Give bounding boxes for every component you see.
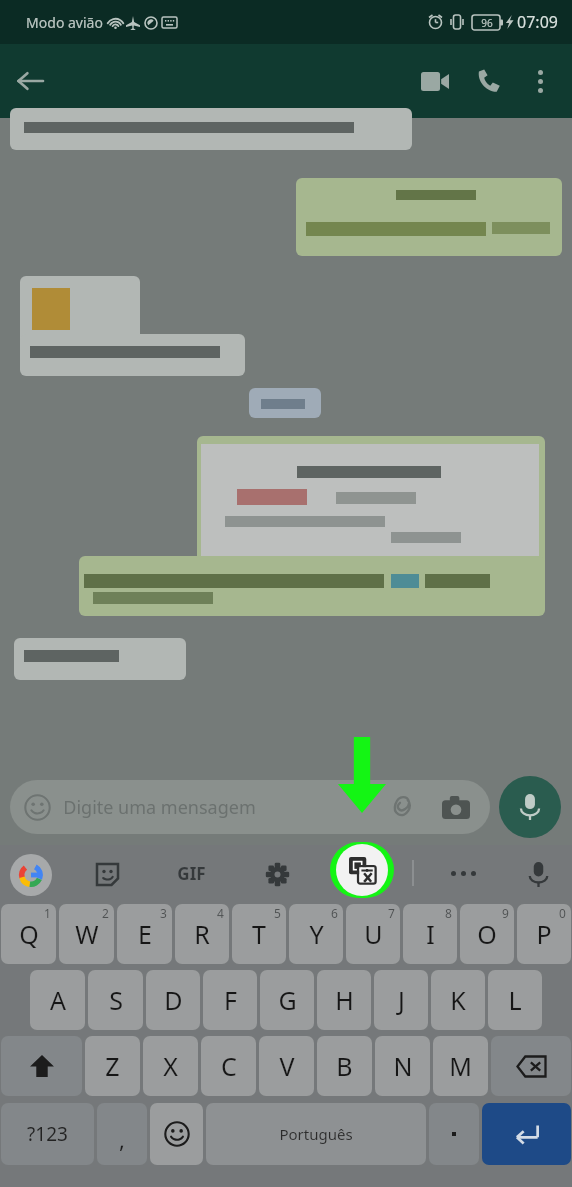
staticText: 4 <box>217 905 224 921</box>
staticText: J <box>398 983 405 1017</box>
button[interactable]: W <box>59 904 114 964</box>
staticText: W <box>75 917 99 951</box>
button[interactable]: C <box>201 1036 256 1096</box>
staticText: G <box>278 983 297 1017</box>
button[interactable]: ?123 <box>1 1103 94 1165</box>
staticText: A <box>50 983 66 1017</box>
button[interactable]: Q <box>1 904 56 964</box>
staticText: O <box>477 917 497 951</box>
button[interactable]: G <box>260 970 314 1030</box>
staticText: Z <box>105 1049 120 1083</box>
button[interactable]: D <box>146 970 200 1030</box>
staticText: M <box>449 1049 472 1083</box>
button[interactable]: L <box>488 970 542 1030</box>
staticText: Modo avião <box>26 13 103 32</box>
button[interactable]: Digite uma mensagem <box>10 780 490 834</box>
button[interactable]: A <box>30 970 85 1030</box>
staticText: 7 <box>388 905 395 921</box>
button[interactable]: U <box>346 904 400 964</box>
button[interactable]: N <box>375 1036 430 1096</box>
button[interactable]: More <box>440 859 486 887</box>
button[interactable]: P <box>517 904 571 964</box>
staticText: I <box>426 917 435 951</box>
staticText: 96 <box>481 16 493 30</box>
staticText: R <box>194 917 210 951</box>
staticText: ?123 <box>27 1121 68 1147</box>
staticText: S <box>109 983 123 1017</box>
button[interactable]: Settings <box>260 857 294 891</box>
button[interactable]: Emoji <box>150 1103 203 1165</box>
button[interactable]: , <box>97 1103 147 1165</box>
staticText: 1 <box>44 905 51 921</box>
button[interactable]: K <box>431 970 485 1030</box>
button[interactable]: Z <box>85 1036 140 1096</box>
staticText: U <box>364 917 383 951</box>
staticText: V <box>279 1049 295 1083</box>
button[interactable]: Stickers <box>90 857 124 891</box>
staticText: B <box>336 1049 353 1083</box>
staticText: Q <box>19 917 39 951</box>
staticText: P <box>536 917 552 951</box>
staticText: E <box>138 917 152 951</box>
staticText: X <box>163 1049 178 1083</box>
staticText: Digite uma mensagem <box>63 795 256 820</box>
staticText: , <box>119 1124 125 1154</box>
button[interactable]: B <box>317 1036 372 1096</box>
button[interactable]: X <box>143 1036 198 1096</box>
staticText: D <box>164 983 183 1017</box>
staticText: 6 <box>331 905 338 921</box>
staticText: K <box>450 983 466 1017</box>
staticText: H <box>335 983 354 1017</box>
button[interactable]: GIF <box>168 859 214 887</box>
staticText: 2 <box>102 905 109 921</box>
button[interactable]: Português <box>206 1103 426 1165</box>
staticText: T <box>252 917 266 951</box>
button[interactable]: Enter <box>482 1103 571 1165</box>
staticText: 3 <box>160 905 167 921</box>
button[interactable]: Back <box>6 57 54 105</box>
button[interactable]: Shift <box>1 1036 82 1096</box>
button[interactable]: E <box>117 904 172 964</box>
staticText: F <box>224 983 237 1017</box>
button[interactable]: F <box>203 970 257 1030</box>
button[interactable]: Y <box>289 904 343 964</box>
button[interactable]: O <box>460 904 514 964</box>
button[interactable]: R <box>175 904 229 964</box>
staticText: 0 <box>559 905 566 921</box>
button[interactable]: H <box>317 970 371 1030</box>
staticText: 8 <box>445 905 452 921</box>
button[interactable]: M <box>433 1036 488 1096</box>
staticText: GIF <box>177 862 206 885</box>
button[interactable]: Translate <box>336 844 388 896</box>
button[interactable]: Voice call <box>462 54 516 108</box>
button[interactable]: I <box>403 904 457 964</box>
staticText: 5 <box>274 905 281 921</box>
button[interactable]: Backspace <box>491 1036 571 1096</box>
button[interactable]: Voice input <box>521 857 555 891</box>
staticText: L <box>508 983 522 1017</box>
button[interactable]: More options <box>516 57 564 105</box>
staticText: Português <box>279 1124 353 1144</box>
button[interactable]: Google search <box>10 854 52 896</box>
staticText: Y <box>309 917 324 951</box>
staticText: N <box>393 1049 413 1083</box>
button[interactable]: Voice message <box>499 776 561 838</box>
staticText: C <box>221 1049 237 1083</box>
button[interactable]: T <box>232 904 286 964</box>
button[interactable]: J <box>374 970 428 1030</box>
button[interactable]: Video call <box>408 54 462 108</box>
button[interactable] <box>429 1103 479 1165</box>
button[interactable]: S <box>88 970 143 1030</box>
staticText: 07:09 <box>517 11 558 33</box>
staticText: 9 <box>502 905 509 921</box>
button[interactable]: V <box>259 1036 314 1096</box>
